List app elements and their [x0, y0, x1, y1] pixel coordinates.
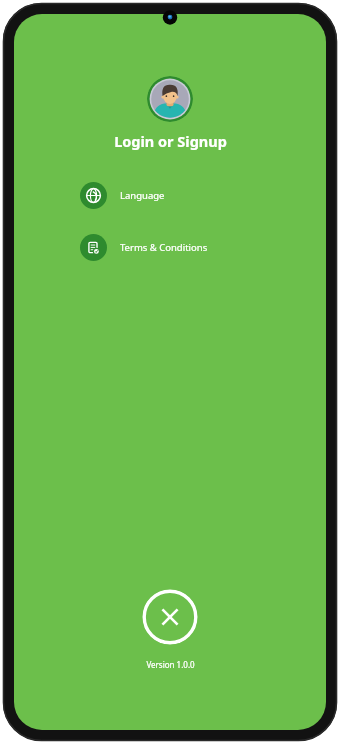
staticText: Version 1.0.0: [146, 659, 195, 670]
button[interactable]: Login or Signup: [114, 131, 227, 151]
staticText: Terms & Conditions: [120, 241, 208, 254]
button[interactable]: Language: [14, 178, 326, 212]
staticText: Language: [120, 189, 165, 202]
button[interactable]: Close: [142, 589, 198, 645]
button[interactable]: Profile avatar: [147, 76, 193, 122]
button[interactable]: Terms & Conditions: [14, 230, 326, 264]
